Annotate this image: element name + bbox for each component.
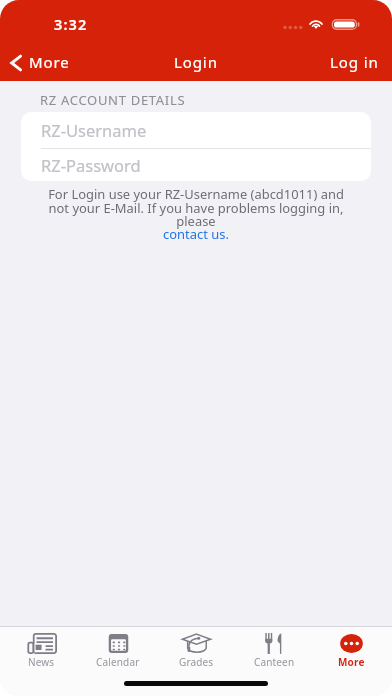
button[interactable]: Calendar [81,627,155,670]
staticText: Log in [330,52,379,72]
staticText: For Login use your RZ-Username (abcd1011… [12,185,380,242]
staticText: RZ ACCOUNT DETAILS [40,91,186,109]
staticText: More [29,52,70,72]
button[interactable]: Log in [317,46,392,78]
button[interactable]: News [4,627,78,670]
staticText: Calendar [96,655,140,669]
staticText: RZ-Password [41,154,141,176]
button[interactable]: More [314,627,388,670]
button[interactable]: Canteen [237,627,311,670]
staticText: RZ-Username [41,119,147,141]
staticText: 3:32 [54,14,88,34]
staticText: More [338,655,365,669]
staticText: Login [174,52,218,72]
button[interactable]: Grades [159,627,233,670]
staticText: News [28,655,55,669]
button[interactable]: RZ-Username [21,112,371,148]
button[interactable]: RZ-Password [21,149,371,181]
staticText: Grades [179,655,214,669]
button[interactable]: More [0,46,80,78]
staticText: Canteen [254,655,295,669]
